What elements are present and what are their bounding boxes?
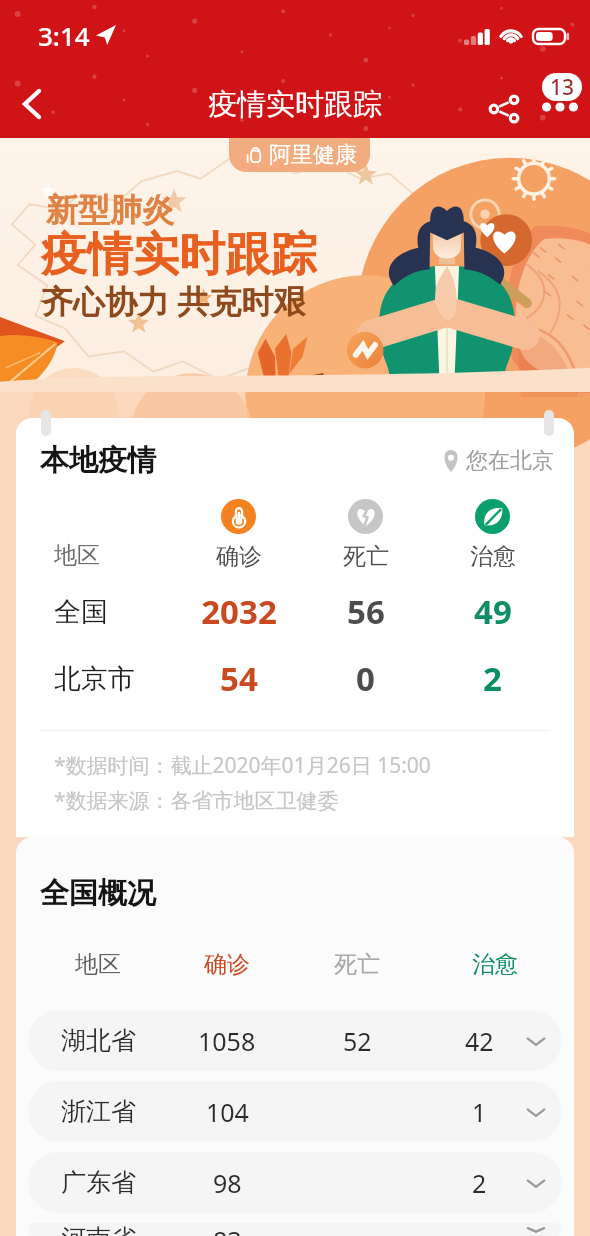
staticText: 56 — [347, 589, 385, 634]
staticText: 52 — [343, 1024, 372, 1058]
staticText: 本地疫情 — [40, 442, 156, 479]
button[interactable]: 分享 — [479, 84, 529, 134]
staticText: 全国 — [54, 595, 108, 629]
staticText: *数据时间：截止2020年01月26日 15:00 — [54, 751, 431, 780]
staticText: 治愈 — [472, 950, 518, 979]
button[interactable]: 河南省 — [28, 1223, 562, 1236]
button[interactable]: 更多 — [536, 70, 588, 138]
staticText: 阿里健康 — [269, 141, 357, 169]
staticText: 1058 — [198, 1024, 256, 1058]
button[interactable]: 浙江省 — [28, 1081, 562, 1142]
staticText: 疫情实时跟踪 — [208, 86, 382, 123]
staticText: *数据来源：各省市地区卫健委 — [54, 786, 339, 815]
staticText: 2 — [483, 656, 502, 701]
staticText: 全国概况 — [40, 875, 156, 912]
staticText: 42 — [465, 1024, 494, 1058]
staticText: 新型肺炎 — [46, 190, 174, 230]
button[interactable]: 湖北省 — [28, 1010, 562, 1071]
staticText: 确诊 — [204, 950, 250, 979]
staticText: 浙江省 — [61, 1096, 136, 1127]
staticText: 北京市 — [54, 662, 135, 696]
staticText: 49 — [474, 589, 512, 634]
staticText: 3:14 — [38, 18, 90, 53]
staticText: 广东省 — [61, 1167, 136, 1198]
staticText: 83 — [213, 1223, 242, 1236]
staticText: 2 — [472, 1166, 487, 1200]
staticText: 2032 — [201, 589, 277, 634]
button[interactable]: 返回 — [8, 80, 56, 128]
staticText: 确诊 — [216, 542, 262, 571]
button[interactable]: 您在北京 — [442, 447, 554, 475]
staticText: 死亡 — [334, 950, 380, 979]
staticText: 98 — [213, 1166, 242, 1200]
button[interactable]: 广东省 — [28, 1152, 562, 1213]
staticText: 齐心协力 共克时艰 — [41, 279, 306, 323]
staticText: 54 — [220, 656, 258, 701]
staticText: 湖北省 — [61, 1025, 136, 1056]
staticText: 地区 — [54, 541, 100, 570]
staticText: 死亡 — [343, 542, 389, 571]
staticText: 河南省 — [61, 1223, 136, 1236]
staticText: 13 — [550, 73, 575, 101]
staticText: 104 — [206, 1095, 249, 1129]
staticText: 您在北京 — [466, 447, 554, 475]
staticText: 1 — [472, 1095, 487, 1129]
staticText: 地区 — [75, 950, 121, 979]
staticText: 0 — [356, 656, 375, 701]
staticText: 治愈 — [470, 542, 516, 571]
staticText: 疫情实时跟踪 — [41, 226, 317, 284]
